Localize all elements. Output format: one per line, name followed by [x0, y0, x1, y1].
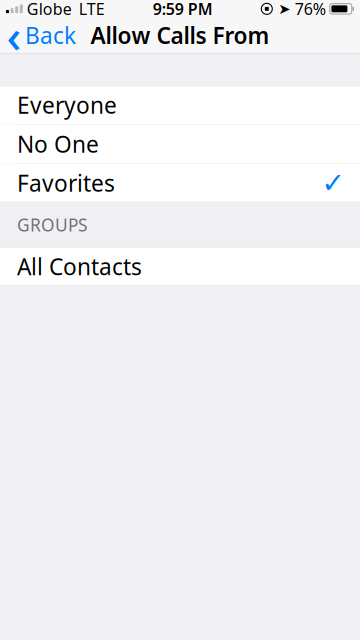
staticText: All Contacts — [17, 251, 142, 281]
staticText: ➤ — [278, 0, 290, 17]
staticText: ✓ — [321, 167, 344, 199]
staticText: Back — [25, 20, 76, 50]
staticText: LTE — [79, 0, 105, 19]
button[interactable]: No One — [0, 125, 360, 164]
staticText: ‹ — [6, 5, 21, 65]
staticText: Everyone — [17, 90, 117, 120]
staticText: 76% — [295, 0, 326, 19]
button[interactable]: Everyone — [0, 86, 360, 125]
button[interactable]: All Contacts — [0, 247, 360, 286]
staticText: No One — [17, 129, 99, 159]
staticText: 9:59 PM — [153, 0, 213, 19]
button[interactable]: ‹ — [0, 14, 86, 56]
staticText: GROUPS — [17, 213, 88, 236]
staticText: Allow Calls From — [90, 20, 269, 50]
staticText: Globe — [27, 0, 72, 19]
button[interactable]: Favorites — [0, 164, 360, 202]
staticText: Favorites — [17, 168, 115, 198]
